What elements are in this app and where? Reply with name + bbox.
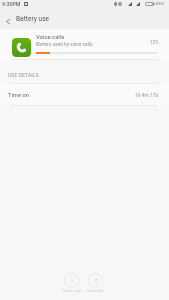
button[interactable]: Back: [0, 13, 16, 29]
staticText: 85%: [156, 1, 165, 6]
staticText: Force stop: [62, 288, 82, 293]
staticText: 9:30PM: [2, 1, 21, 7]
staticText: 12%: [150, 40, 159, 45]
staticText: Time on: [8, 92, 29, 99]
button[interactable]: Force stop: [58, 273, 85, 293]
staticText: Voice calls: [36, 34, 65, 41]
staticText: Battery use: [16, 15, 50, 23]
staticText: Uninstall: [87, 288, 104, 293]
button[interactable]: [0, 29, 169, 60]
staticText: Battery used by voice calls: [36, 42, 93, 48]
staticText: 1h 4m 17s: [135, 92, 159, 98]
button[interactable]: [0, 84, 169, 106]
staticText: USE DETAILS: [8, 72, 39, 78]
button[interactable]: Uninstall: [82, 273, 109, 293]
